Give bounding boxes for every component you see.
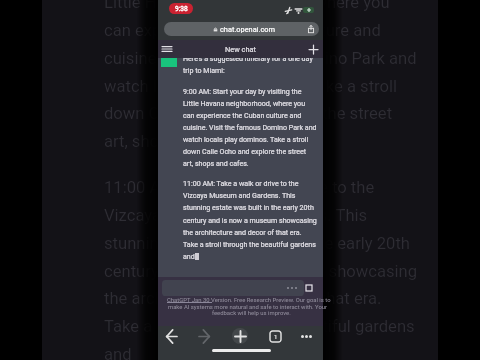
staticText: down Calle Ocho and explore the street xyxy=(104,104,393,123)
staticText: cuisine. Visit the famous Domino Park an… xyxy=(104,49,417,68)
staticText: Vizcaya Museum and Gardens. This xyxy=(104,206,368,225)
button[interactable]: Stop generating xyxy=(303,282,314,293)
button[interactable]: More xyxy=(295,325,317,347)
staticText: and xyxy=(104,345,132,360)
staticText: watch locals play dominos. Take a stroll xyxy=(183,135,309,143)
staticText: trip to Miami: xyxy=(183,66,225,74)
button[interactable]: New tab xyxy=(229,325,251,347)
staticText: can experience the Cuban culture and xyxy=(104,21,381,40)
button[interactable]: chat.openai.com xyxy=(164,22,319,36)
staticText: chat.openai.com xyxy=(220,25,276,34)
staticText: Here's a suggested itinerary for a one d… xyxy=(183,54,313,62)
staticText: ChatGPT Jan 30 Version. Free Research Pr… xyxy=(167,297,331,304)
button[interactable] xyxy=(162,280,304,296)
staticText: Vizcaya Museum and Gardens. This xyxy=(183,191,296,199)
button[interactable]: Share xyxy=(305,23,317,35)
staticText: 9:00 AM: Start your day by visiting the xyxy=(183,87,302,95)
staticText: watch locals play dominos. Take a stroll xyxy=(104,77,398,96)
staticText: 9:38 xyxy=(175,5,188,13)
staticText: cuisine. Visit the famous Domino Park an… xyxy=(183,123,317,131)
staticText: 1 xyxy=(274,333,278,340)
staticText: Little Havana neighborhood, where you xyxy=(104,0,390,12)
staticText: art, shops and cafes. xyxy=(183,159,249,167)
staticText: stunning estate was built in the early 2… xyxy=(104,234,410,253)
button[interactable]: Menu xyxy=(158,40,176,58)
staticText: art, shops and cafes. xyxy=(104,132,258,151)
staticText: the architecture and decor of that era. xyxy=(183,228,302,236)
staticText: the architecture and decor of that era. xyxy=(104,289,382,308)
staticText: Take a stroll through the beautiful gard… xyxy=(183,240,316,248)
button[interactable]: Forward xyxy=(194,325,216,347)
staticText: century and is now a museum showcasing xyxy=(183,216,317,224)
staticText: 11:00 AM: Take a walk or drive to the xyxy=(183,179,299,187)
staticText: can experience the Cuban culture and xyxy=(183,111,302,119)
staticText: feedback will help us improve. xyxy=(212,310,291,317)
staticText: Take a stroll through the beautiful gard… xyxy=(104,317,415,336)
staticText: down Calle Ocho and explore the street xyxy=(183,147,307,155)
staticText: 11:00 AM: Take a walk or drive to the xyxy=(104,178,375,197)
staticText: make AI systems more natural and safe to… xyxy=(168,304,328,311)
button[interactable]: New chat xyxy=(304,40,323,58)
staticText: century and is now a museum showcasing xyxy=(104,262,418,281)
staticText: stunning estate was built in the early 2… xyxy=(183,203,314,211)
button[interactable]: Back xyxy=(160,325,182,347)
staticText: New chat xyxy=(225,45,256,54)
button[interactable]: Tabs xyxy=(264,325,286,347)
staticText: Little Havana neighborhood, where you xyxy=(183,99,306,107)
staticText: and xyxy=(183,252,195,260)
